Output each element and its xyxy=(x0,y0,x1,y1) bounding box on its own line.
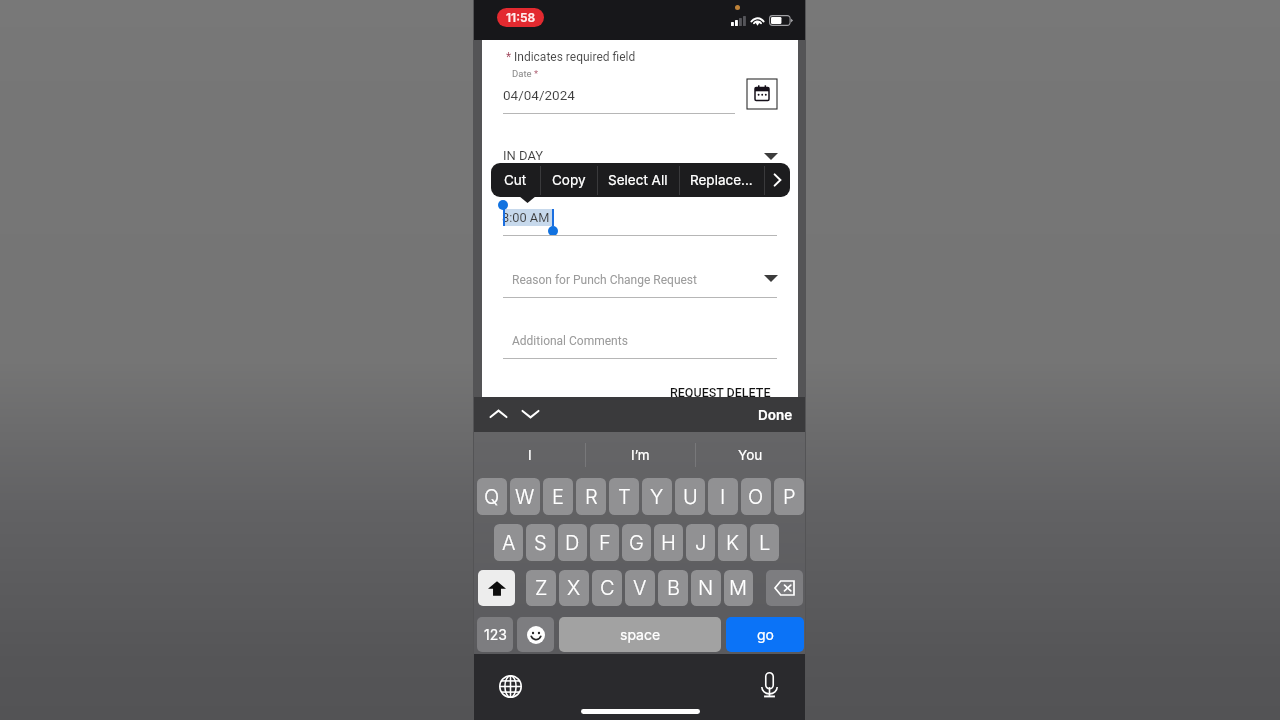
staticText: I xyxy=(528,447,532,463)
button[interactable]: S xyxy=(526,524,555,561)
staticText: W xyxy=(515,485,535,509)
staticText: 123 xyxy=(484,626,507,643)
staticText: Select All xyxy=(608,172,668,188)
button[interactable]: Next field xyxy=(521,407,540,421)
staticText: Indicates required field xyxy=(514,50,636,64)
button[interactable]: 123 xyxy=(477,617,513,652)
button[interactable]: C xyxy=(592,570,622,606)
button[interactable]: R xyxy=(576,478,606,515)
button[interactable]: Previous field xyxy=(489,407,508,421)
staticText: J xyxy=(695,531,707,555)
staticText: 8:00 AM xyxy=(502,210,550,225)
button[interactable]: F xyxy=(590,524,619,561)
button[interactable]: T xyxy=(609,478,639,515)
button[interactable]: Shift xyxy=(478,570,515,606)
button[interactable]: Y xyxy=(642,478,672,515)
button[interactable]: A xyxy=(494,524,523,561)
button[interactable]: M xyxy=(724,570,753,606)
button[interactable]: Additional Comments xyxy=(512,334,777,352)
staticText: N xyxy=(698,576,714,600)
staticText: T xyxy=(618,485,631,509)
button[interactable]: D xyxy=(558,524,587,561)
staticText: Q xyxy=(484,485,500,509)
staticText: A xyxy=(502,531,516,555)
button[interactable]: X xyxy=(559,570,589,606)
button[interactable]: IN DAY xyxy=(503,147,777,167)
staticText: V xyxy=(633,576,647,600)
button[interactable]: I xyxy=(474,433,585,476)
button[interactable]: Z xyxy=(526,570,556,606)
staticText: Reason for Punch Change Request xyxy=(512,273,697,287)
staticText: You xyxy=(738,447,763,463)
button[interactable]: V xyxy=(625,570,655,606)
button[interactable]: B xyxy=(658,570,688,606)
button[interactable]: G xyxy=(622,524,651,561)
button[interactable]: W xyxy=(510,478,540,515)
button[interactable]: Backspace xyxy=(766,570,803,606)
button[interactable]: Reason for Punch Change Request xyxy=(512,273,777,291)
staticText: P xyxy=(783,485,796,509)
staticText: space xyxy=(620,626,661,643)
button[interactable]: N xyxy=(691,570,721,606)
staticText: go xyxy=(757,626,774,643)
button[interactable]: E xyxy=(543,478,573,515)
button[interactable]: Replace... xyxy=(679,163,764,197)
staticText: C xyxy=(600,576,615,600)
staticText: Done xyxy=(758,407,793,423)
button[interactable]: You xyxy=(695,433,805,476)
button[interactable]: Emoji keyboard xyxy=(517,617,554,652)
staticText: 11:58 xyxy=(506,10,536,25)
button[interactable]: U xyxy=(675,478,705,515)
staticText: D xyxy=(565,531,580,555)
staticText: K xyxy=(726,531,739,555)
staticText: I xyxy=(720,485,726,509)
button[interactable]: Cut xyxy=(491,163,540,197)
button[interactable]: L xyxy=(750,524,779,561)
staticText: Cut xyxy=(504,172,527,188)
staticText: * xyxy=(506,50,512,64)
staticText: U xyxy=(683,485,698,509)
staticText: REQUEST DELETE xyxy=(670,385,771,400)
staticText: S xyxy=(534,531,547,555)
staticText: Replace... xyxy=(690,172,753,188)
button[interactable]: I’m xyxy=(585,433,695,476)
staticText: Actual Punch Time xyxy=(512,186,592,197)
button[interactable]: REQUEST DELETE xyxy=(670,385,771,400)
staticText: I’m xyxy=(631,447,650,463)
staticText: Date xyxy=(512,68,532,79)
button[interactable]: O xyxy=(741,478,771,515)
button[interactable]: Open date picker xyxy=(747,79,777,109)
staticText: E xyxy=(552,485,564,509)
staticText: Additional Comments xyxy=(512,334,628,348)
button[interactable]: go xyxy=(726,617,804,652)
button[interactable]: P xyxy=(774,478,804,515)
button[interactable]: K xyxy=(718,524,747,561)
button[interactable]: Q xyxy=(477,478,507,515)
staticText: M xyxy=(729,576,748,600)
button[interactable]: Dictation xyxy=(759,670,780,700)
button[interactable]: Change keyboard xyxy=(497,673,523,699)
staticText: F xyxy=(599,531,611,555)
button[interactable]: I xyxy=(708,478,738,515)
button[interactable]: H xyxy=(654,524,683,561)
staticText: IN DAY xyxy=(503,148,544,163)
button[interactable]: Copy xyxy=(540,163,597,197)
staticText: Y xyxy=(650,485,664,509)
staticText: Z xyxy=(535,576,548,600)
button[interactable]: More options xyxy=(764,163,790,197)
staticText: G xyxy=(629,531,644,555)
staticText: R xyxy=(585,485,598,509)
staticText: H xyxy=(661,531,676,555)
staticText: * xyxy=(534,68,539,79)
staticText: Copy xyxy=(552,172,586,188)
button[interactable]: space xyxy=(559,617,721,652)
button[interactable]: Done xyxy=(758,407,793,423)
button[interactable]: J xyxy=(686,524,715,561)
staticText: L xyxy=(759,531,771,555)
staticText: X xyxy=(567,576,581,600)
staticText: 04/04/2024 xyxy=(503,87,575,103)
staticText: O xyxy=(748,485,764,509)
button[interactable]: Select All xyxy=(597,163,679,197)
staticText: B xyxy=(667,576,680,600)
